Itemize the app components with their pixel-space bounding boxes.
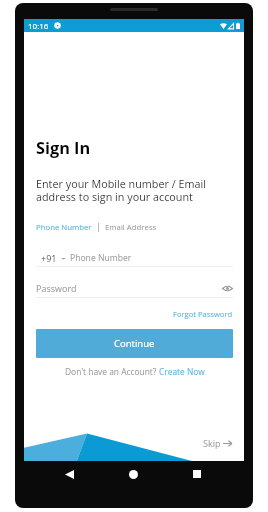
button[interactable]: Phone Number xyxy=(36,222,92,233)
staticText: Skip xyxy=(203,437,221,449)
staticText: Email Address xyxy=(105,222,157,233)
staticText: +91 xyxy=(41,252,57,264)
staticText: Phone Number xyxy=(36,222,92,233)
staticText: Don't have an Account? xyxy=(65,366,159,377)
staticText: Sign In xyxy=(36,137,91,159)
button[interactable]: Forgot Password xyxy=(173,309,233,319)
button[interactable]: Skip xyxy=(203,437,232,449)
button[interactable]: Show password xyxy=(221,282,233,294)
button[interactable]: Back xyxy=(59,464,79,484)
staticText: Forgot Password xyxy=(173,309,233,319)
button[interactable]: Continue xyxy=(36,329,233,358)
button[interactable]: Create Now xyxy=(159,366,205,377)
staticText: Continue xyxy=(114,337,155,350)
button[interactable]: Home xyxy=(123,464,143,484)
staticText: 10:16 xyxy=(28,20,49,31)
staticText: Password xyxy=(36,282,77,294)
button[interactable]: Recents xyxy=(187,464,207,484)
staticText: Phone Number xyxy=(70,252,132,264)
button[interactable]: Email Address xyxy=(105,222,157,233)
staticText: Create Now xyxy=(159,366,205,377)
staticText: Enter your Mobile number / Email address… xyxy=(36,176,206,204)
